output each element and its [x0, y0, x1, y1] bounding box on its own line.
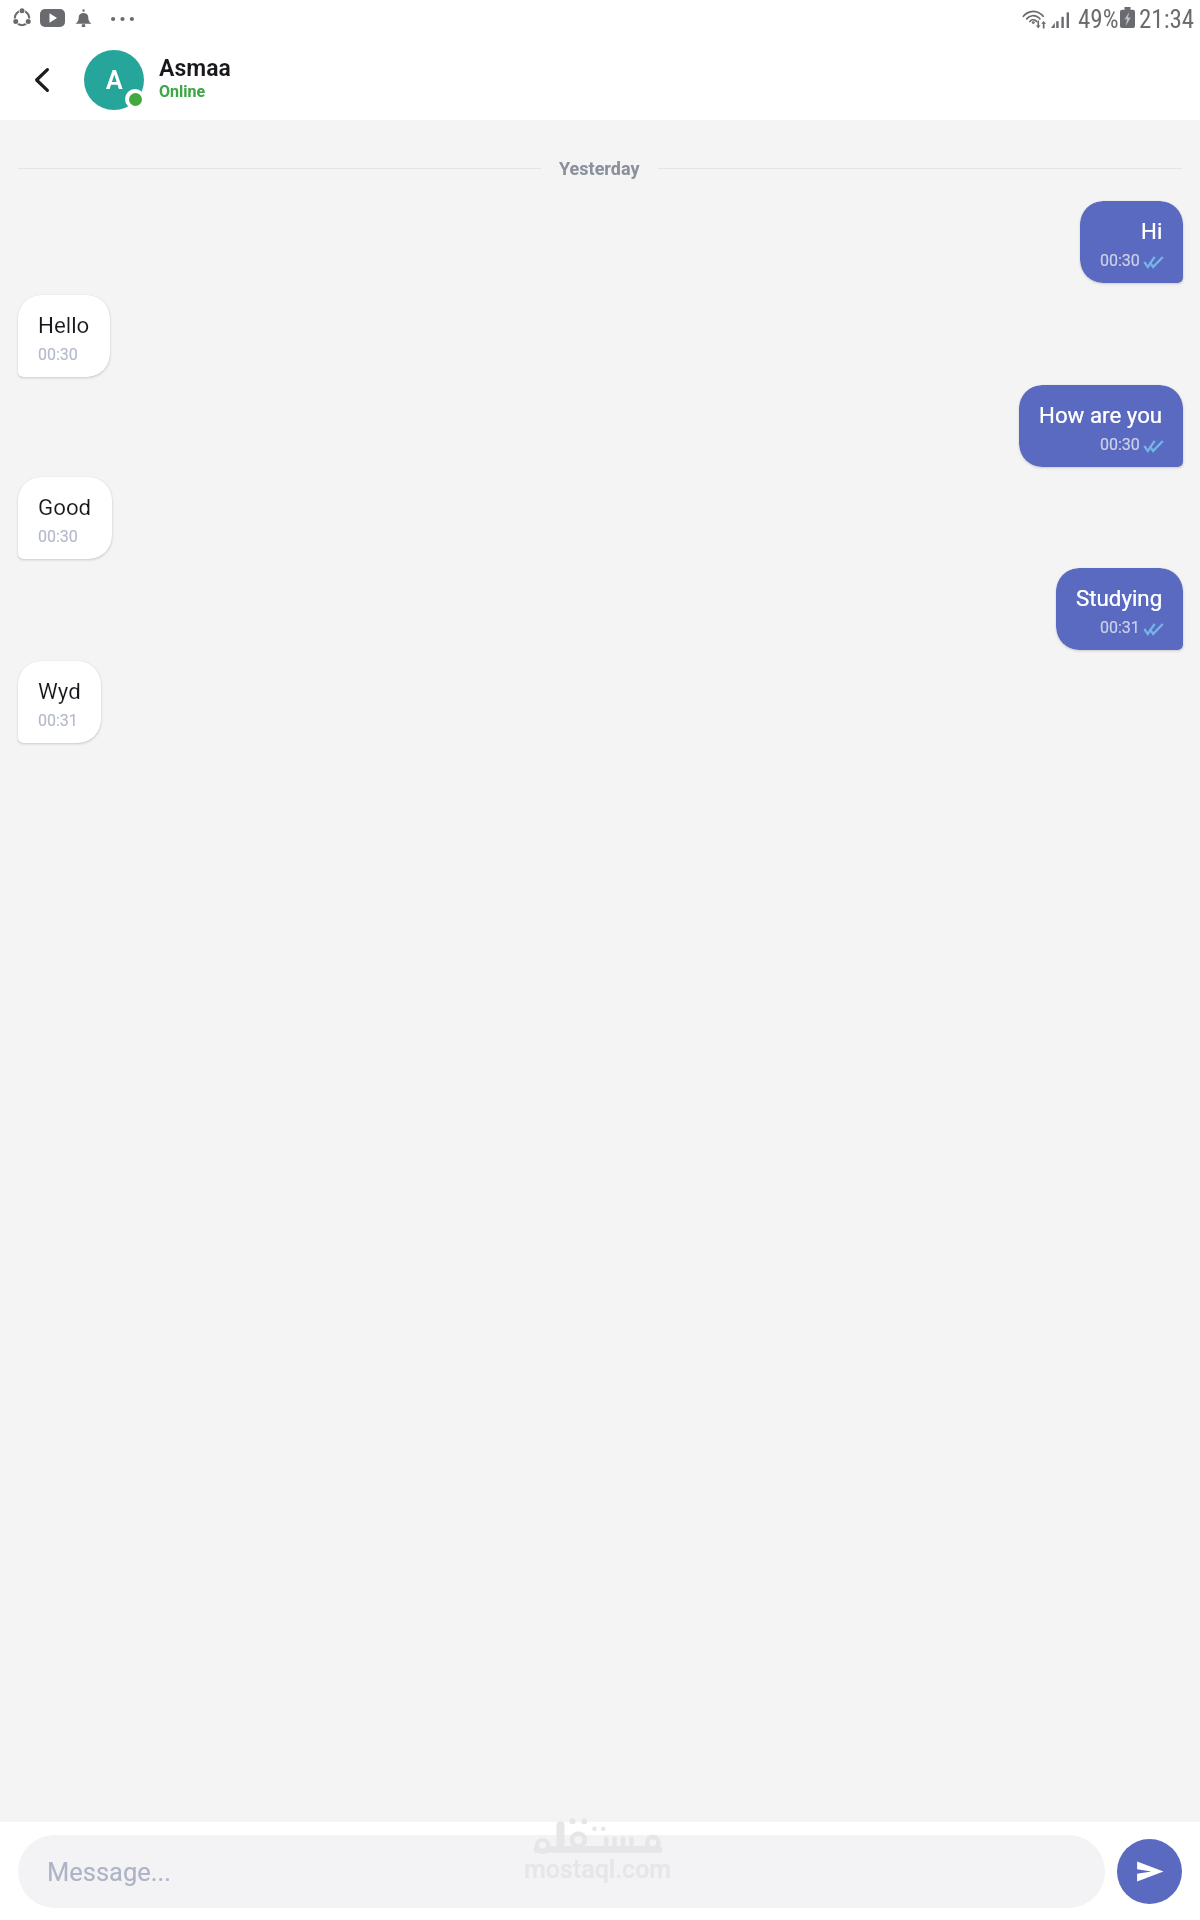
button[interactable]: Studying	[1056, 568, 1183, 650]
staticText: Yesterday	[559, 158, 640, 179]
button[interactable]: Wyd	[18, 661, 101, 743]
button[interactable]: Hello	[18, 295, 110, 377]
staticText: Studying	[1076, 585, 1163, 611]
staticText: 00:31	[1100, 618, 1140, 637]
button[interactable]: Good	[18, 477, 112, 559]
staticText: Wyd	[38, 678, 81, 704]
staticText: Good	[38, 494, 92, 520]
staticText: 00:30	[1100, 435, 1140, 454]
staticText: 00:30	[38, 527, 78, 546]
staticText: Online	[159, 82, 206, 101]
staticText: 00:30	[38, 345, 78, 364]
staticText: 49%	[1078, 5, 1119, 34]
staticText: 21:34	[1139, 5, 1195, 34]
staticText: Message...	[47, 1857, 171, 1887]
staticText: 00:31	[38, 711, 78, 730]
button[interactable]: Hi	[1080, 201, 1183, 283]
staticText: Asmaa	[159, 55, 231, 82]
staticText: A	[106, 66, 123, 95]
button[interactable]: A	[84, 44, 231, 116]
staticText: mostaql.com	[524, 1855, 672, 1884]
button[interactable]: Message...	[18, 1835, 1105, 1908]
button[interactable]: Back	[10, 48, 74, 112]
staticText: Hello	[38, 312, 90, 338]
staticText: How are you	[1039, 402, 1163, 428]
staticText: Hi	[1141, 218, 1163, 244]
staticText: 00:30	[1100, 251, 1140, 270]
button[interactable]: Send	[1117, 1839, 1182, 1904]
button[interactable]: How are you	[1019, 385, 1183, 467]
